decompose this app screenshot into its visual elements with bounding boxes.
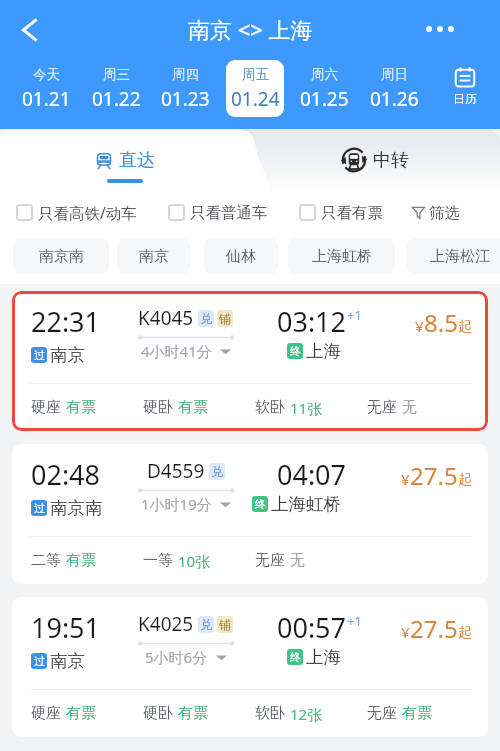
staticText: 南京: [50, 344, 85, 366]
staticText: 有票: [66, 398, 96, 417]
button[interactable]: 周五: [226, 60, 284, 117]
button[interactable]: 只看有票: [299, 188, 383, 237]
staticText: 日历: [453, 91, 477, 106]
staticText: 中转: [373, 149, 409, 172]
staticText: 4小时41分: [141, 341, 212, 361]
staticText: 27.5: [410, 612, 458, 645]
staticText: 无座: [255, 551, 285, 570]
staticText: 终: [255, 497, 266, 511]
staticText: 01.22: [92, 86, 141, 112]
button[interactable]: 22:31: [12, 291, 488, 431]
staticText: 起: [458, 624, 472, 642]
staticText: 周日: [381, 66, 408, 83]
button[interactable]: 周四: [156, 60, 214, 117]
staticText: 只看普通车: [190, 203, 268, 223]
staticText: 兑: [200, 617, 212, 632]
staticText: 周四: [172, 66, 199, 83]
button[interactable]: 南京: [117, 238, 190, 274]
staticText: 无: [290, 551, 305, 570]
staticText: 一等: [143, 551, 173, 570]
button[interactable]: 今天: [17, 60, 75, 117]
staticText: ¥: [401, 622, 410, 642]
staticText: ¥: [401, 469, 410, 489]
staticText: 只看高铁/动车: [38, 202, 137, 223]
staticText: 硬座: [31, 704, 61, 723]
button[interactable]: 19:51: [12, 597, 488, 737]
button[interactable]: 筛选: [412, 188, 460, 237]
staticText: 南京: [139, 247, 169, 266]
button[interactable]: 只看高铁/动车: [16, 188, 137, 237]
staticText: 10张: [178, 551, 211, 571]
button[interactable]: 上海虹桥: [288, 238, 395, 274]
staticText: +1: [347, 612, 362, 630]
staticText: 有票: [66, 704, 96, 723]
button[interactable]: 只看普通车: [168, 188, 268, 237]
staticText: 铺: [219, 311, 231, 326]
button[interactable]: 南京南: [13, 238, 109, 274]
staticText: 上海: [306, 340, 341, 362]
staticText: ¥: [415, 316, 424, 336]
staticText: 今天: [33, 66, 60, 83]
staticText: 南京: [50, 650, 85, 672]
staticText: 只看有票: [321, 203, 383, 223]
staticText: 过: [34, 501, 45, 515]
staticText: 有票: [178, 398, 208, 417]
staticText: 起: [458, 471, 472, 489]
staticText: 二等: [31, 551, 61, 570]
staticText: 12张: [290, 704, 323, 724]
button[interactable]: 直达: [0, 129, 250, 189]
staticText: 无座: [367, 704, 397, 723]
staticText: 19:51: [31, 609, 101, 646]
staticText: 兑: [211, 464, 223, 479]
staticText: 有票: [402, 704, 432, 723]
staticText: 上海: [306, 646, 341, 668]
button[interactable]: Calendar: [437, 60, 493, 117]
staticText: 03:12: [277, 303, 347, 340]
staticText: 27.5: [410, 459, 458, 492]
staticText: 硬座: [31, 398, 61, 417]
staticText: 硬卧: [143, 704, 173, 723]
staticText: 硬卧: [143, 398, 173, 417]
button[interactable]: 周六: [295, 60, 353, 117]
staticText: 终: [290, 344, 301, 358]
staticText: 周三: [103, 66, 130, 83]
staticText: 南京南: [50, 497, 103, 519]
staticText: 起: [458, 318, 472, 336]
staticText: 01.24: [231, 86, 280, 112]
staticText: 上海松江: [430, 247, 490, 266]
staticText: K4025: [138, 611, 194, 637]
staticText: 过: [34, 654, 45, 668]
staticText: 上海虹桥: [312, 247, 372, 266]
staticText: 有票: [178, 704, 208, 723]
button[interactable]: 周三: [87, 60, 145, 117]
staticText: 02:48: [31, 456, 101, 493]
button[interactable]: 仙林: [204, 238, 278, 274]
button[interactable]: 02:48: [12, 444, 488, 584]
staticText: 11张: [290, 398, 323, 418]
staticText: 周六: [311, 66, 338, 83]
button[interactable]: 周日: [365, 60, 423, 117]
button[interactable]: Back: [6, 5, 52, 51]
staticText: 直达: [119, 149, 155, 172]
staticText: 1小时19分: [141, 494, 212, 514]
staticText: 00:57: [277, 609, 347, 646]
button[interactable]: More options: [417, 0, 463, 56]
staticText: 01.21: [22, 86, 71, 112]
staticText: 南京 <> 上海: [188, 14, 313, 44]
staticText: 软卧: [255, 704, 285, 723]
staticText: 01.25: [300, 86, 349, 112]
staticText: 兑: [200, 311, 212, 326]
staticText: D4559: [147, 458, 205, 484]
staticText: K4045: [138, 305, 194, 331]
staticText: 有票: [66, 551, 96, 570]
button[interactable]: 上海松江: [406, 238, 500, 274]
staticText: 仙林: [226, 247, 256, 266]
staticText: 无: [402, 398, 417, 417]
staticText: 8.5: [424, 306, 458, 339]
staticText: 过: [34, 348, 45, 362]
staticText: 01.23: [161, 86, 210, 112]
staticText: 22:31: [31, 303, 101, 340]
staticText: 软卧: [255, 398, 285, 417]
staticText: 01.26: [370, 86, 419, 112]
button[interactable]: 中转: [250, 129, 500, 189]
